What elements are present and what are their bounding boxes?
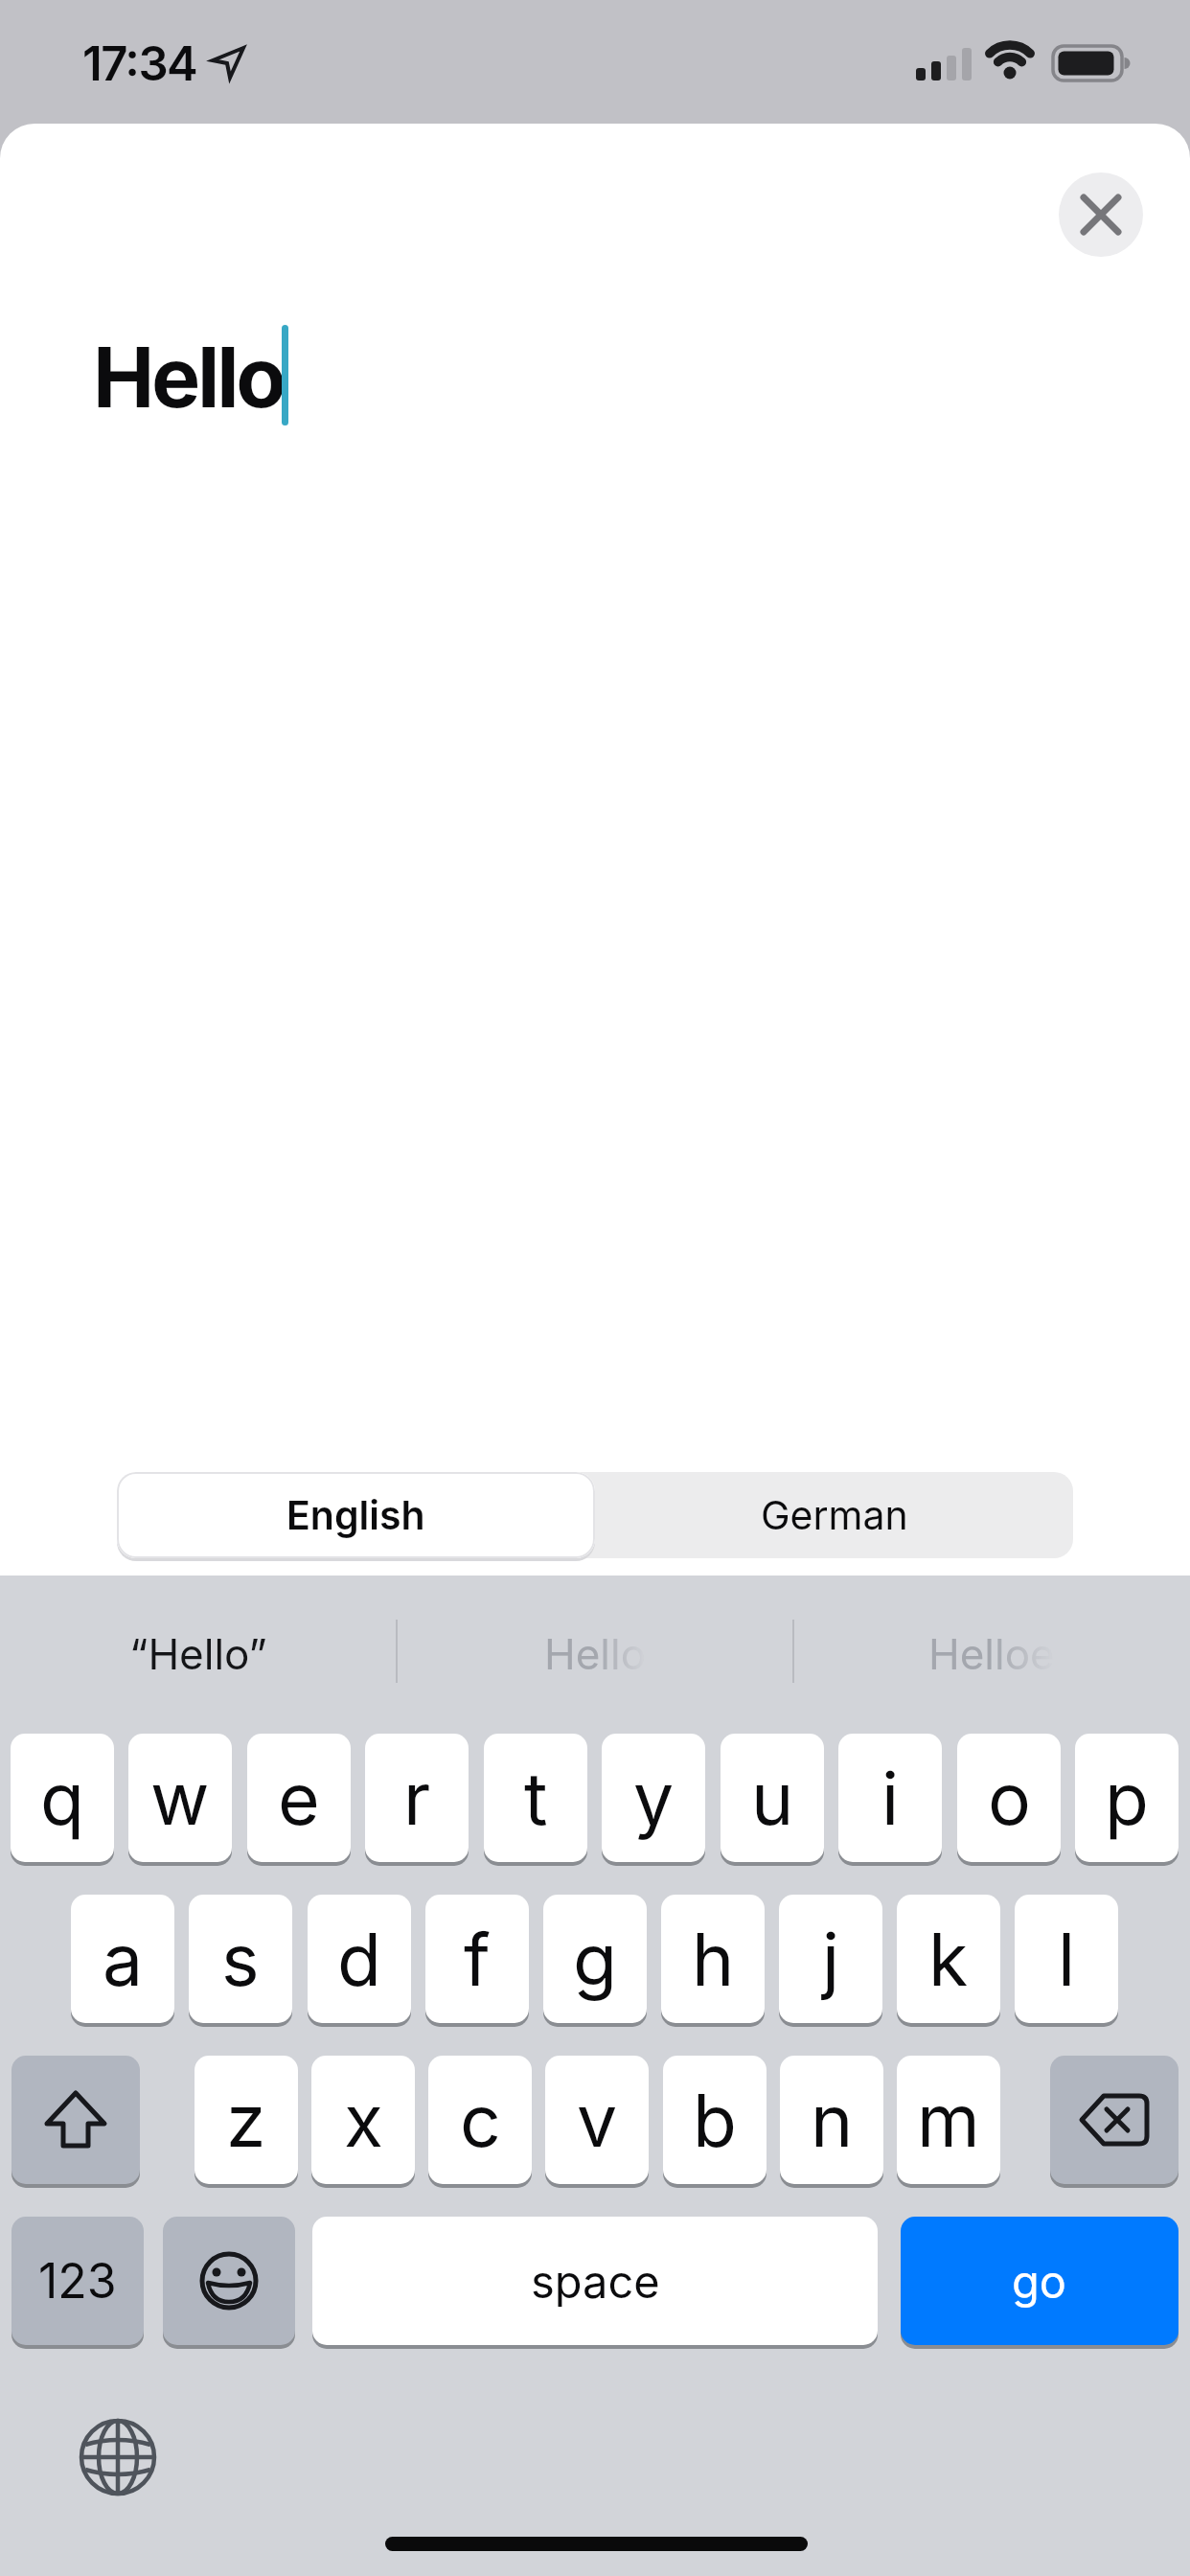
button[interactable]: w — [128, 1734, 232, 1862]
button[interactable]: k — [897, 1895, 1000, 2023]
staticText: c — [460, 2077, 501, 2164]
button[interactable]: 123 — [11, 2217, 144, 2345]
button[interactable]: r — [365, 1734, 469, 1862]
button[interactable]: English — [117, 1472, 595, 1558]
button[interactable] — [11, 2056, 140, 2184]
button[interactable]: n — [780, 2056, 883, 2184]
staticText: i — [881, 1755, 900, 1842]
button[interactable]: a — [71, 1895, 174, 2023]
staticText: e — [278, 1755, 320, 1842]
staticText: space — [531, 2254, 660, 2309]
button[interactable]: h — [661, 1895, 765, 2023]
staticText: a — [103, 1916, 144, 2003]
staticText: go — [1012, 2254, 1067, 2309]
staticText: s — [221, 1916, 260, 2003]
staticText: v — [577, 2077, 618, 2164]
staticText: r — [403, 1755, 431, 1842]
staticText: 17:34 — [82, 35, 197, 92]
staticText: l — [1058, 1916, 1076, 2003]
button[interactable]: Helloe — [793, 1575, 1190, 1731]
button[interactable]: q — [11, 1734, 114, 1862]
button[interactable]: j — [779, 1895, 882, 2023]
staticText: t — [524, 1755, 548, 1842]
staticText: f — [464, 1916, 491, 2003]
staticText: z — [226, 2077, 266, 2164]
staticText: English — [286, 1491, 425, 1539]
button[interactable]: Hello — [397, 1575, 793, 1731]
staticText: “Hello” — [129, 1628, 267, 1679]
button[interactable] — [80, 2419, 156, 2495]
staticText: p — [1105, 1755, 1149, 1842]
button[interactable]: b — [663, 2056, 767, 2184]
staticText: n — [811, 2077, 854, 2164]
button[interactable] — [1050, 2056, 1179, 2184]
button[interactable]: z — [195, 2056, 298, 2184]
staticText: k — [928, 1916, 969, 2003]
staticText: u — [751, 1755, 794, 1842]
button[interactable]: c — [428, 2056, 532, 2184]
staticText: German — [761, 1491, 908, 1539]
button[interactable]: s — [189, 1895, 292, 2023]
button[interactable]: l — [1015, 1895, 1118, 2023]
staticText: x — [344, 2077, 383, 2164]
button[interactable]: t — [484, 1734, 587, 1862]
button[interactable]: p — [1075, 1734, 1179, 1862]
button[interactable] — [163, 2217, 295, 2345]
staticText: w — [150, 1755, 210, 1842]
button[interactable]: German — [595, 1472, 1073, 1558]
button[interactable]: y — [602, 1734, 705, 1862]
staticText: Hello — [93, 328, 284, 427]
staticText: j — [822, 1916, 840, 2003]
staticText: q — [40, 1755, 84, 1842]
button[interactable]: i — [838, 1734, 942, 1862]
staticText: y — [633, 1755, 675, 1842]
button[interactable]: f — [425, 1895, 529, 2023]
staticText: o — [988, 1755, 1031, 1842]
staticText: b — [693, 2077, 737, 2164]
button[interactable] — [1059, 172, 1143, 257]
staticText: Hello — [544, 1628, 647, 1679]
button[interactable]: v — [545, 2056, 649, 2184]
button[interactable]: x — [311, 2056, 415, 2184]
staticText: m — [917, 2077, 980, 2164]
staticText: Helloe — [928, 1628, 1055, 1679]
button[interactable]: space — [312, 2217, 878, 2345]
staticText: h — [692, 1916, 735, 2003]
button[interactable]: g — [543, 1895, 647, 2023]
button[interactable]: u — [721, 1734, 824, 1862]
button[interactable]: go — [901, 2217, 1179, 2345]
staticText: g — [573, 1916, 617, 2003]
button[interactable]: m — [897, 2056, 1000, 2184]
staticText: d — [337, 1916, 381, 2003]
button[interactable]: e — [247, 1734, 351, 1862]
button[interactable]: d — [308, 1895, 411, 2023]
button[interactable]: “Hello” — [0, 1575, 397, 1731]
button[interactable]: o — [957, 1734, 1061, 1862]
staticText: 123 — [38, 2252, 117, 2310]
